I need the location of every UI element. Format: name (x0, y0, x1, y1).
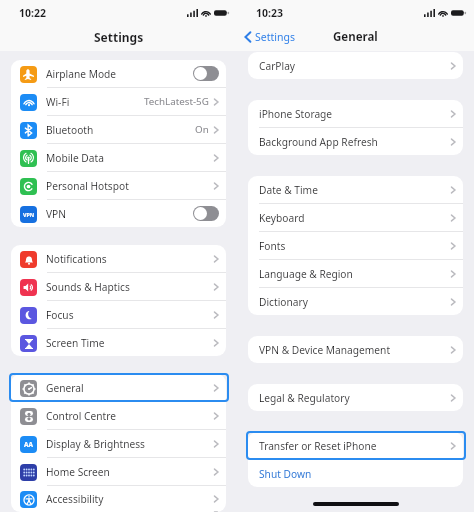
button[interactable]: General (11, 374, 226, 401)
button[interactable]: Bluetooth (11, 116, 226, 143)
button[interactable]: Language & Region (248, 260, 463, 287)
staticText: Dictionary (259, 295, 308, 309)
staticText: Transfer or Reset iPhone (259, 439, 377, 453)
staticText: Shut Down (259, 467, 312, 481)
staticText: Focus (46, 308, 74, 322)
staticText: AA (24, 440, 33, 449)
staticText: TechLatest-5G (144, 95, 209, 108)
staticText: Personal Hotspot (46, 179, 129, 193)
button[interactable]: Airplane Mode (11, 60, 226, 87)
staticText: Notifications (46, 252, 107, 266)
button[interactable]: Focus (11, 301, 226, 328)
button[interactable]: Keyboard (248, 204, 463, 231)
button[interactable]: AA (11, 430, 226, 457)
button[interactable]: Sounds & Haptics (11, 273, 226, 300)
staticText: Fonts (259, 239, 286, 253)
staticText: Settings (255, 30, 295, 44)
button[interactable]: Transfer or Reset iPhone (248, 432, 463, 459)
button[interactable]: Notifications (11, 245, 226, 272)
button[interactable]: iPhone Storage (248, 100, 463, 127)
staticText: Settings (94, 29, 144, 45)
staticText: On (195, 123, 209, 136)
button[interactable]: Personal Hotspot (11, 172, 226, 199)
button[interactable]: Dictionary (248, 288, 463, 315)
staticText: Wi-Fi (46, 95, 70, 109)
staticText: CarPlay (259, 59, 296, 73)
staticText: Home Screen (46, 465, 110, 479)
button[interactable]: CarPlay (248, 52, 463, 79)
button[interactable]: Accessibility (11, 486, 226, 512)
staticText: VPN (23, 211, 35, 218)
staticText: Control Centre (46, 409, 116, 423)
button[interactable]: VPN (11, 200, 226, 227)
button[interactable]: Mobile Data (11, 144, 226, 171)
staticText: Background App Refresh (259, 135, 378, 149)
staticText: VPN & Device Management (259, 343, 391, 357)
button[interactable]: Settings (242, 28, 297, 46)
button[interactable]: VPN & Device Management (248, 336, 463, 363)
staticText: Legal & Regulatory (259, 391, 350, 405)
staticText: Mobile Data (46, 151, 104, 165)
staticText: Screen Time (46, 336, 105, 350)
staticText: 10:22 (19, 6, 46, 20)
staticText: Keyboard (259, 211, 305, 225)
staticText: Sounds & Haptics (46, 280, 130, 294)
staticText: VPN (46, 207, 67, 221)
button[interactable]: Control Centre (11, 402, 226, 429)
staticText: Language & Region (259, 267, 353, 281)
button[interactable]: Date & Time (248, 176, 463, 203)
button[interactable]: Background App Refresh (248, 128, 463, 155)
staticText: iPhone Storage (259, 107, 333, 121)
button[interactable]: Toggle, off (193, 206, 219, 221)
staticText: Bluetooth (46, 123, 94, 137)
staticText: 10:23 (256, 6, 283, 20)
staticText: Airplane Mode (46, 67, 117, 81)
button[interactable]: Home Screen (11, 458, 226, 485)
button[interactable]: Shut Down (248, 460, 463, 487)
staticText: General (333, 29, 378, 45)
staticText: Display & Brightness (46, 437, 146, 451)
button[interactable]: Wi-Fi (11, 88, 226, 115)
button[interactable]: Fonts (248, 232, 463, 259)
staticText: Date & Time (259, 183, 318, 197)
button[interactable]: Toggle, off (193, 66, 219, 81)
staticText: Accessibility (46, 492, 104, 506)
button[interactable]: Legal & Regulatory (248, 384, 463, 411)
staticText: General (46, 381, 84, 395)
button[interactable]: Screen Time (11, 329, 226, 356)
